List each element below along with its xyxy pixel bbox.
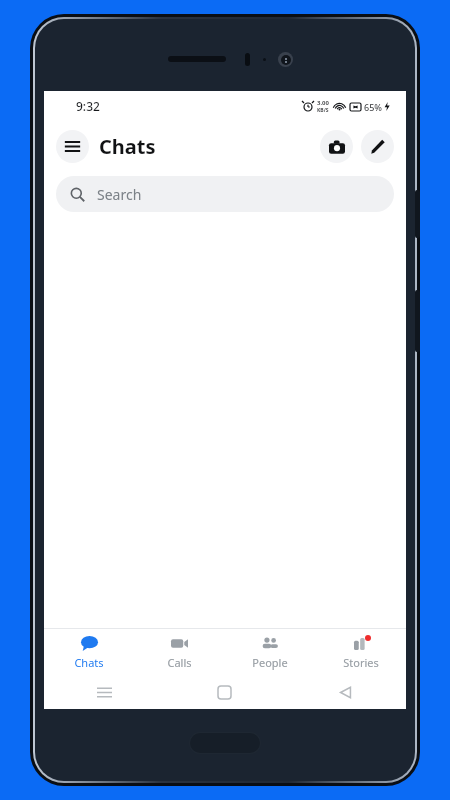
staticText: Chats	[74, 655, 104, 670]
staticText: KB/S	[317, 107, 329, 114]
button[interactable]: Calls	[134, 629, 224, 675]
staticText: Search	[97, 185, 142, 204]
staticText: 9:32	[76, 98, 100, 114]
staticText: Calls	[167, 655, 192, 670]
button[interactable]: Home	[164, 675, 285, 709]
staticText: People	[252, 655, 288, 670]
staticText: Chats	[99, 133, 156, 160]
button[interactable]: Stories	[315, 629, 406, 675]
staticText: 3.00	[317, 99, 329, 107]
button[interactable]: Chats	[44, 629, 134, 675]
button[interactable]: People	[224, 629, 315, 675]
button[interactable]: Search	[56, 176, 394, 212]
button[interactable]: Menu	[56, 130, 89, 163]
button[interactable]: Camera	[320, 130, 353, 163]
staticText: 65%	[364, 101, 382, 113]
button[interactable]: Recents	[44, 675, 164, 709]
button[interactable]: New message	[361, 130, 394, 163]
staticText: Stories	[343, 655, 379, 670]
button[interactable]: Back	[285, 675, 406, 709]
